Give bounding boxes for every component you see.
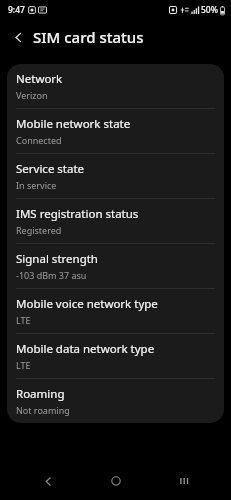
button[interactable]: Mobile voice network type <box>7 289 224 333</box>
staticText: Connected <box>16 134 62 146</box>
button[interactable]: Mobile data network type <box>7 334 224 378</box>
staticText: Signal strength <box>16 251 98 267</box>
staticText: 50% <box>201 4 218 16</box>
staticText: Mobile network state <box>16 116 131 132</box>
staticText: Verizon <box>16 89 48 101</box>
staticText: Service state <box>16 161 85 177</box>
staticText: Registered <box>16 224 62 236</box>
staticText: LTE <box>16 359 31 371</box>
button[interactable]: Signal strength <box>7 244 224 288</box>
button[interactable]: Home <box>97 462 135 500</box>
staticText: Mobile voice network type <box>16 296 158 312</box>
staticText: Mobile data network type <box>16 341 155 357</box>
staticText: -103 dBm 37 asu <box>16 269 87 281</box>
button[interactable]: Recent apps <box>164 462 202 500</box>
button[interactable]: Back <box>6 25 30 49</box>
button[interactable]: Service state <box>7 154 224 198</box>
staticText: In service <box>16 179 57 191</box>
staticText: 9:47 <box>8 4 25 16</box>
staticText: SIM card status <box>33 27 144 47</box>
button[interactable]: Roaming <box>7 379 224 423</box>
staticText: IMS registration status <box>16 206 139 222</box>
staticText: LTE <box>16 314 31 326</box>
button[interactable]: Network <box>7 64 224 108</box>
staticText: Network <box>16 71 63 87</box>
button[interactable]: IMS registration status <box>7 199 224 243</box>
staticText: Not roaming <box>16 404 70 416</box>
button[interactable]: Mobile network state <box>7 109 224 153</box>
button[interactable]: Back <box>29 462 67 500</box>
staticText: Roaming <box>16 386 65 402</box>
